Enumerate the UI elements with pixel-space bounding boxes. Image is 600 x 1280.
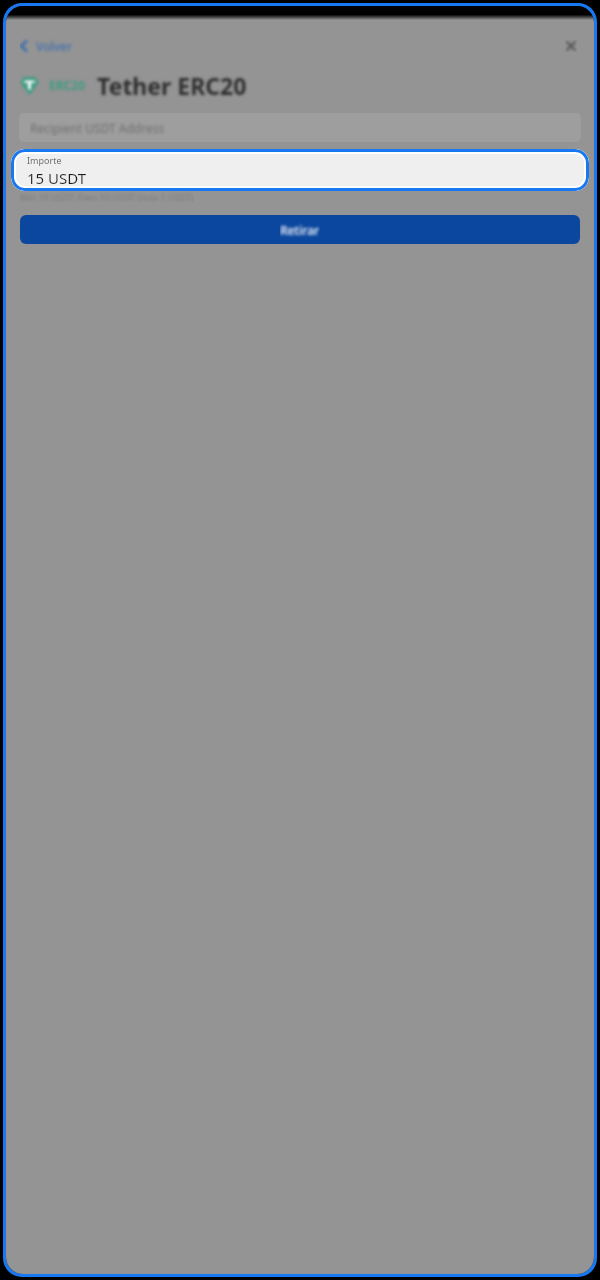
button[interactable]: Importe — [16, 154, 584, 186]
button[interactable]: Recipient USDT Address — [19, 113, 581, 142]
staticText: 15 USDT — [27, 168, 87, 186]
button[interactable]: Close — [561, 36, 581, 56]
button[interactable]: Volver — [16, 35, 77, 57]
staticText: Recipient USDT Address — [30, 120, 165, 136]
button[interactable]: Retirar — [20, 215, 580, 244]
staticText: Volver — [36, 38, 73, 54]
staticText: Retirar — [280, 222, 320, 238]
staticText: Importe — [27, 154, 62, 166]
staticText: ERC20 — [49, 77, 86, 93]
staticText: Tether ERC20 — [97, 70, 247, 101]
